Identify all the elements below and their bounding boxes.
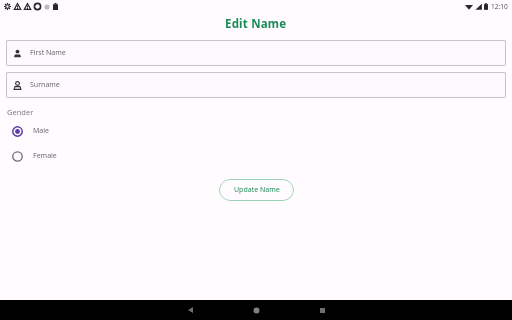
button[interactable]: Recent apps: [289, 300, 355, 320]
staticText: Male: [33, 126, 50, 136]
staticText: Gender: [7, 107, 34, 117]
staticText: Surname: [30, 80, 60, 90]
staticText: Female: [33, 151, 57, 161]
button[interactable]: Update Name: [219, 179, 294, 201]
staticText: Edit Name: [225, 16, 287, 32]
button[interactable]: Back: [157, 300, 223, 320]
button[interactable]: Male: [12, 121, 102, 141]
staticText: Update Name: [234, 185, 280, 195]
button[interactable]: Home: [223, 300, 289, 320]
button[interactable]: Female: [12, 146, 102, 166]
staticText: First Name: [30, 48, 66, 58]
button[interactable]: Surname: [6, 72, 506, 98]
staticText: 12:10: [491, 2, 508, 11]
button[interactable]: First Name: [6, 40, 506, 66]
